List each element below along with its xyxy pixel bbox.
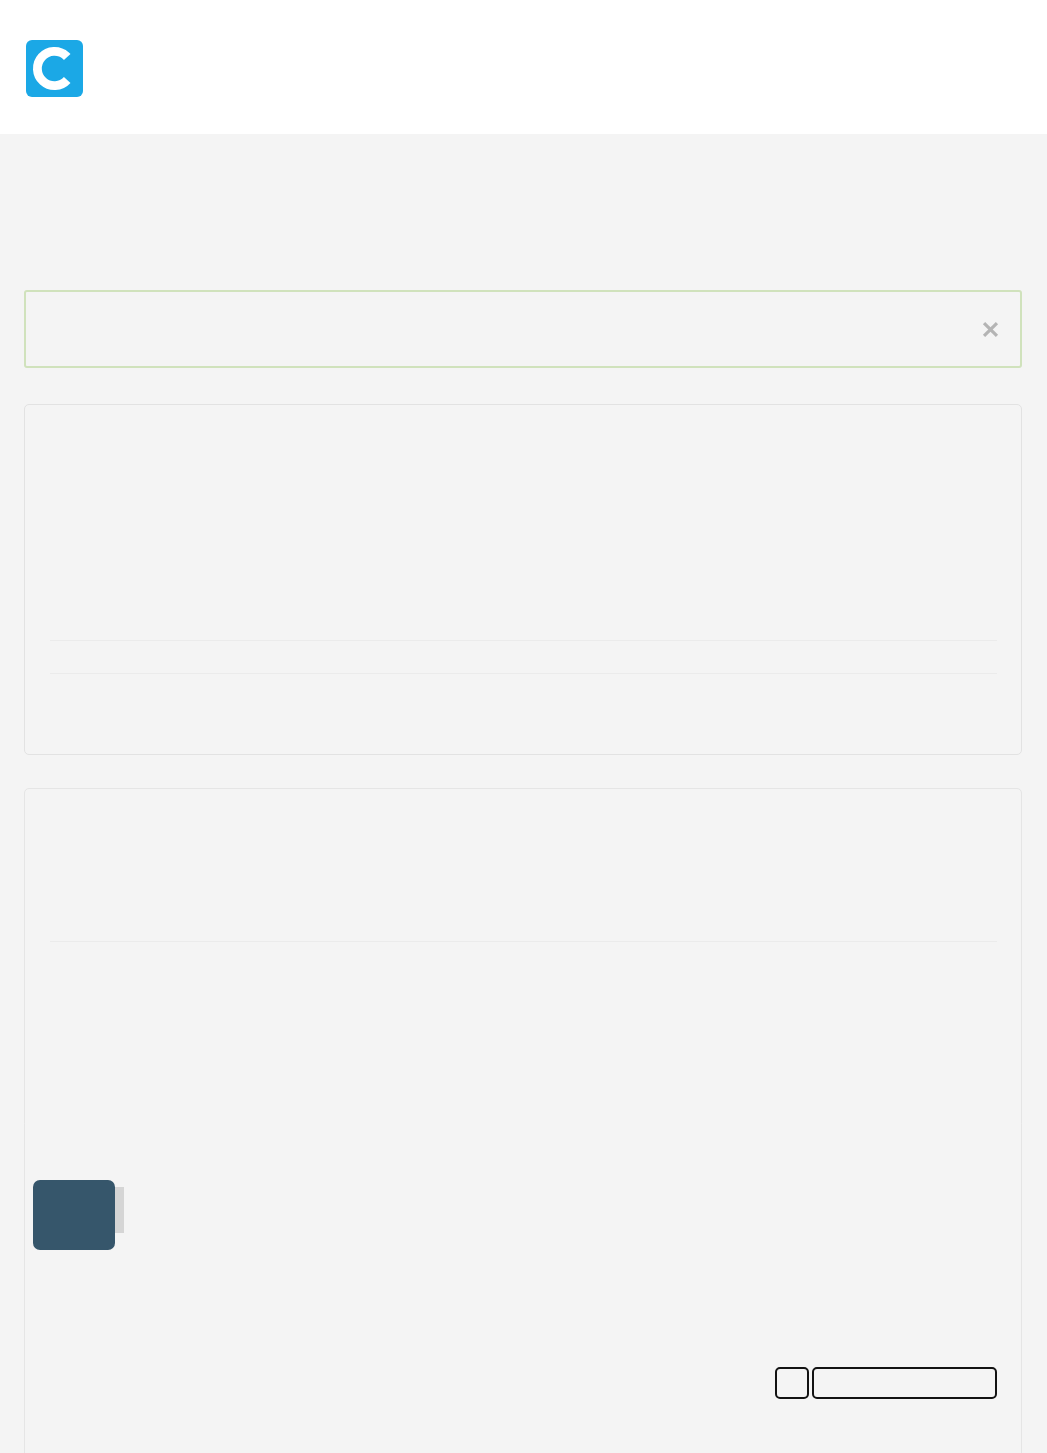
- button[interactable]: uma: [24, 788, 1022, 1453]
- button[interactable]: Tooltip: [33, 1180, 115, 1250]
- button[interactable]: Close: [970, 309, 1010, 349]
- button[interactable]: Input field: [812, 1367, 997, 1399]
- button[interactable]: Quantity: [775, 1367, 809, 1399]
- button[interactable]: Home: [26, 40, 83, 97]
